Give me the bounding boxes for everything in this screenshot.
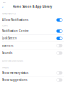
staticText: Banners xyxy=(2,44,13,47)
staticText: Sounds xyxy=(2,51,12,55)
staticText: 9:41 xyxy=(3,1,6,3)
staticText: Show memory status xyxy=(2,71,28,75)
staticText: Lock Screen xyxy=(2,37,17,40)
button[interactable]: Banners xyxy=(0,42,64,49)
staticText: ALERTS xyxy=(2,25,8,27)
button[interactable]: Show suggestions xyxy=(0,76,64,83)
staticText: APP ICONS xyxy=(2,67,9,69)
staticText: Notification Centre xyxy=(2,29,29,33)
button[interactable]: Sounds xyxy=(0,49,64,57)
staticText: Show suggestions xyxy=(2,78,27,82)
staticText: NOTIFICATION STYLE xyxy=(2,13,16,15)
button[interactable]: Notification Centre xyxy=(0,27,64,35)
button[interactable]: Lock Screen xyxy=(0,35,64,42)
staticText: Home Screen & App Library xyxy=(12,5,51,8)
staticText: Allow Notifications xyxy=(2,18,28,22)
staticText: Banner style can be changed. xyxy=(2,60,23,62)
staticText: ‹ xyxy=(2,4,3,9)
button[interactable]: Allow Notifications xyxy=(0,15,64,24)
button[interactable]: Show memory status xyxy=(0,69,64,76)
button[interactable]: Back xyxy=(0,4,4,9)
